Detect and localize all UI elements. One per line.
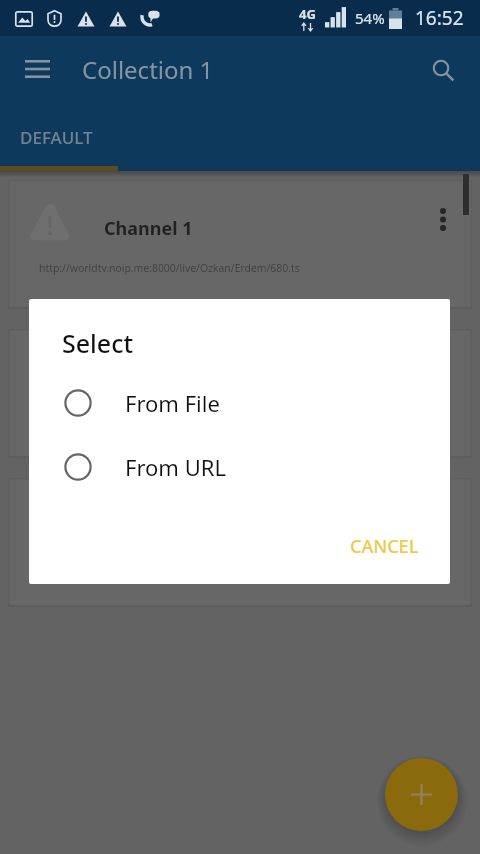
button[interactable]: Search (420, 47, 466, 93)
button[interactable] (8, 478, 472, 607)
staticText: From URL (125, 452, 226, 482)
button[interactable]: Open navigation drawer (14, 46, 60, 92)
staticText: 16:52 (415, 5, 464, 31)
staticText: Channel 1 (104, 216, 193, 241)
staticText: CANCEL (350, 534, 419, 559)
button[interactable] (8, 329, 472, 458)
staticText: Collection 1 (82, 53, 214, 86)
staticText: 54% (355, 8, 385, 28)
button[interactable]: DEFAULT (0, 116, 118, 171)
button[interactable]: More options (423, 199, 463, 239)
button[interactable]: CANCEL (340, 527, 428, 565)
button[interactable]: Add channel (385, 758, 458, 831)
staticText: Select (62, 326, 134, 360)
button[interactable]: From File (29, 381, 450, 425)
staticText: 4G (299, 5, 316, 23)
staticText: DEFAULT (20, 126, 93, 149)
button[interactable]: Channel 1 (8, 180, 472, 309)
staticText: From File (125, 388, 220, 418)
staticText: http://worldtv.noip.me:8000/live/Ozkan/E… (39, 261, 300, 275)
button[interactable]: From URL (29, 445, 450, 489)
